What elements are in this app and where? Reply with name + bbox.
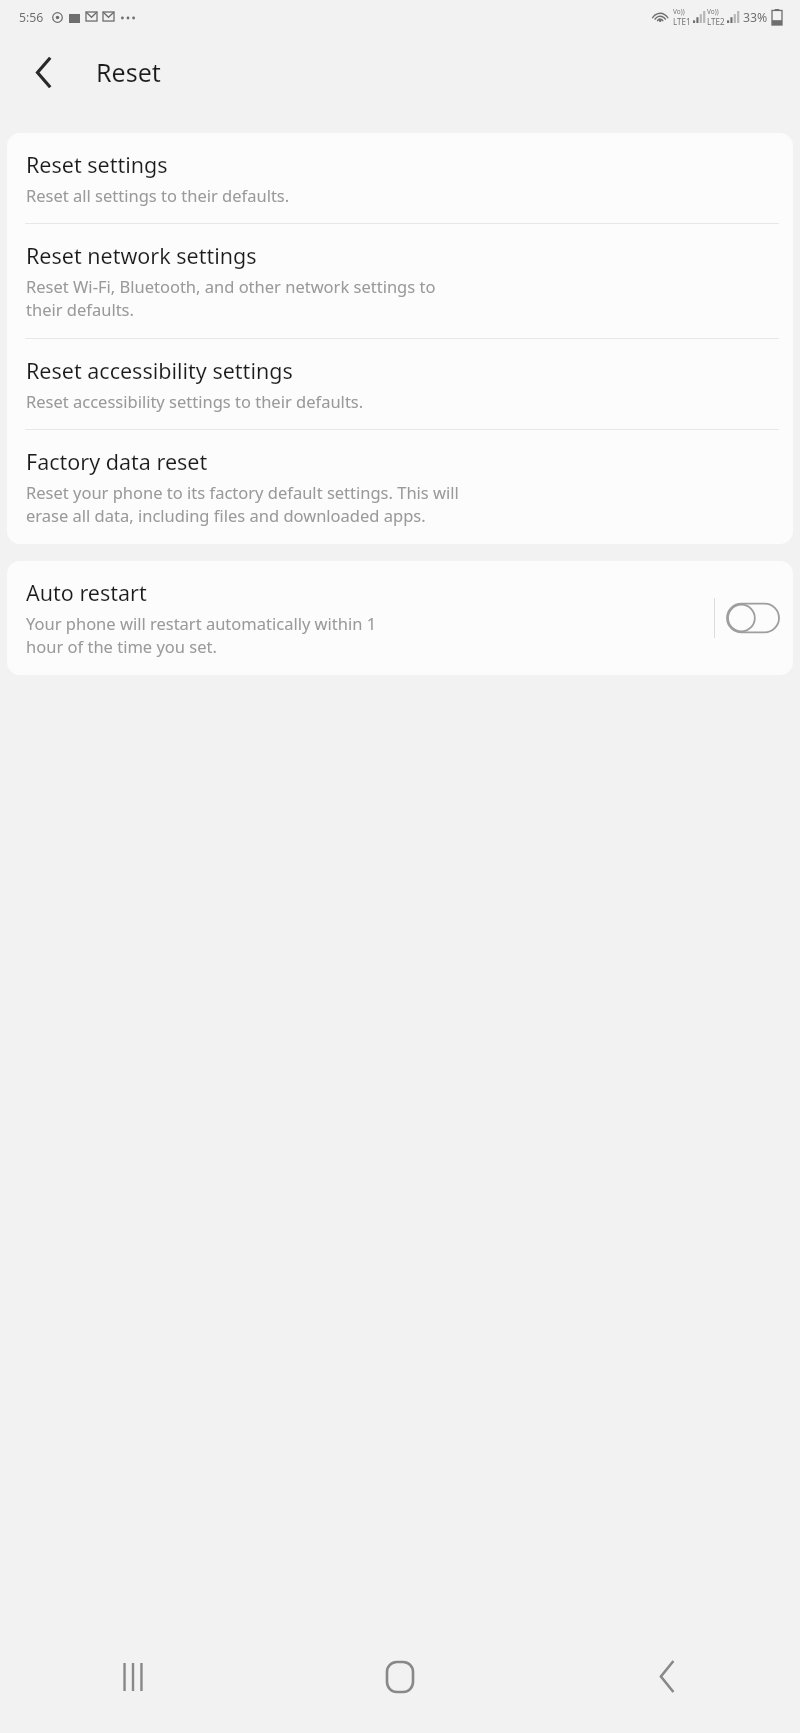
staticText: Your phone will restart automatically wi… [26, 612, 377, 658]
staticText: Vo)) [707, 7, 719, 16]
button[interactable]: Auto restart [7, 561, 793, 675]
button[interactable]: Reset network settings [7, 224, 793, 338]
staticText: Auto restart [26, 578, 147, 607]
button[interactable]: Factory data reset [7, 430, 793, 544]
button[interactable]: Back [533, 1620, 800, 1733]
staticText: Vo)) [673, 7, 685, 16]
button[interactable]: Reset accessibility settings [7, 339, 793, 429]
button[interactable]: Auto restart toggle [727, 598, 779, 638]
staticText: Reset your phone to its factory default … [26, 481, 459, 527]
button[interactable]: Recents [0, 1620, 266, 1733]
button[interactable]: Home [266, 1620, 533, 1733]
staticText: 33% [743, 9, 768, 26]
button[interactable]: Reset settings [7, 133, 793, 223]
staticText: Reset [96, 55, 161, 89]
staticText: Factory data reset [26, 447, 208, 476]
staticText: Reset accessibility settings to their de… [26, 390, 364, 412]
staticText: 5:56 [19, 9, 44, 26]
button[interactable]: Back [20, 49, 66, 95]
staticText: Reset Wi-Fi, Bluetooth, and other networ… [26, 275, 436, 321]
staticText: Reset settings [26, 150, 168, 179]
staticText: Reset all settings to their defaults. [26, 184, 290, 206]
staticText: LTE2 [707, 16, 725, 27]
staticText: LTE1 [673, 16, 691, 27]
staticText: Reset accessibility settings [26, 356, 293, 385]
staticText: Reset network settings [26, 241, 257, 270]
